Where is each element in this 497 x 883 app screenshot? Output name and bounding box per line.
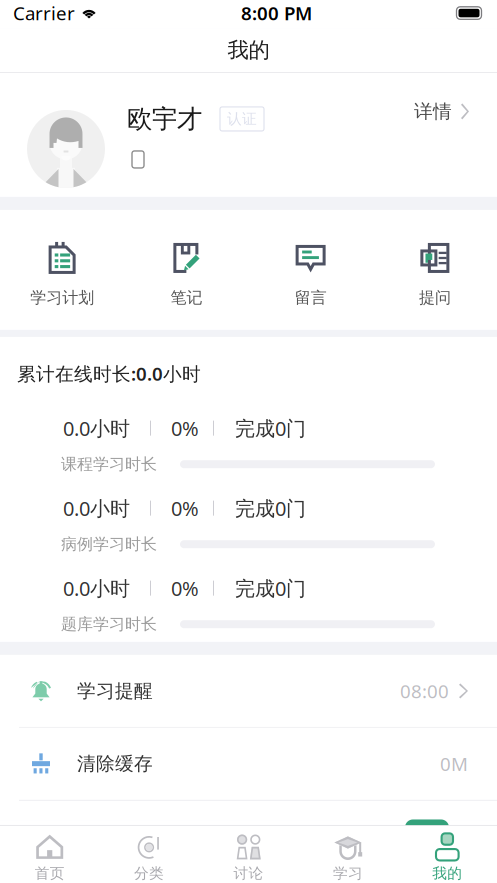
- button[interactable]: 首页: [0, 825, 99, 883]
- staticText: 完成0门: [235, 495, 306, 521]
- staticText: 认证: [227, 110, 257, 128]
- staticText: 完成0门: [235, 415, 306, 441]
- staticText: 学习: [333, 864, 363, 882]
- button[interactable]: Action: [405, 819, 449, 863]
- staticText: 详情: [414, 100, 452, 123]
- button[interactable]: 清除缓存: [0, 728, 497, 800]
- button[interactable]: 我的: [398, 825, 497, 883]
- staticText: 完成0门: [235, 575, 306, 601]
- staticText: 首页: [35, 864, 65, 882]
- staticText: 留言: [295, 288, 327, 308]
- staticText: 清除缓存: [77, 752, 153, 775]
- staticText: 欧宇才: [127, 103, 202, 134]
- staticText: 我的: [227, 37, 269, 63]
- button[interactable]: 笔记: [124, 210, 248, 330]
- button[interactable]: 提问: [373, 210, 497, 330]
- staticText: 题库学习时长: [61, 614, 157, 634]
- button[interactable]: 留言: [248, 210, 373, 330]
- button[interactable]: 学习: [298, 825, 398, 883]
- staticText: 课程学习时长: [61, 454, 157, 474]
- staticText: 提问: [419, 288, 451, 308]
- staticText: 学习提醒: [77, 679, 153, 702]
- staticText: 0%: [171, 415, 199, 441]
- staticText: 讨论: [233, 864, 263, 882]
- staticText: 0.0小时: [63, 415, 130, 441]
- button[interactable]: 学习计划: [0, 210, 124, 330]
- staticText: Carrier: [13, 1, 75, 25]
- staticText: 08:00: [400, 679, 449, 703]
- button[interactable]: 欧宇才: [0, 73, 497, 197]
- staticText: 累计在线时长:0.0小时: [17, 361, 201, 386]
- staticText: 0%: [171, 575, 199, 601]
- staticText: 分类: [134, 864, 164, 882]
- staticText: 8:00 PM: [241, 1, 312, 25]
- staticText: 0.0小时: [63, 495, 130, 521]
- button[interactable]: 学习提醒: [0, 655, 497, 727]
- button[interactable]: 讨论: [199, 825, 298, 883]
- staticText: 0%: [171, 495, 199, 521]
- staticText: 病例学习时长: [61, 534, 157, 554]
- staticText: 我的: [432, 864, 462, 882]
- staticText: 0.0小时: [63, 575, 130, 601]
- button[interactable]: 分类: [99, 825, 199, 883]
- staticText: 学习计划: [30, 288, 94, 308]
- staticText: 笔记: [170, 288, 202, 308]
- staticText: 0M: [440, 751, 468, 776]
